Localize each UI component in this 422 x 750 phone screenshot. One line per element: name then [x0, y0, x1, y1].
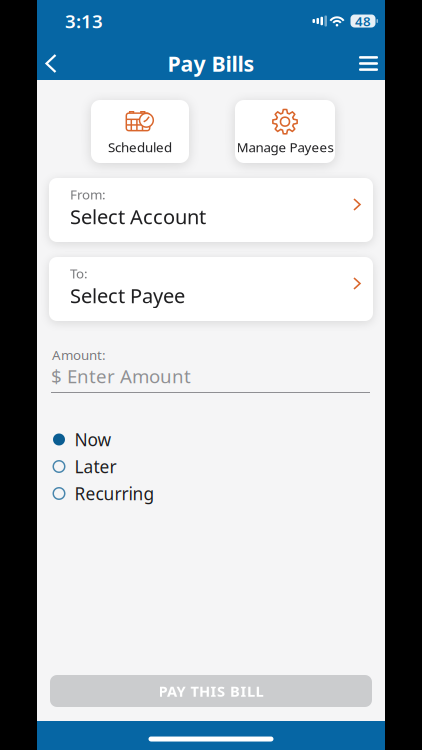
- staticText: Now: [74, 428, 111, 451]
- button[interactable]: Menu: [359, 50, 385, 77]
- staticText: Manage Payees: [236, 138, 333, 156]
- button[interactable]: Back: [37, 48, 57, 79]
- button[interactable]: Later: [37, 453, 385, 480]
- button[interactable]: Enter Amount: [36, 364, 386, 393]
- staticText: PAY THIS BILL: [158, 681, 263, 701]
- button[interactable]: PAY THIS BILL: [50, 675, 372, 707]
- staticText: Select Account: [70, 203, 206, 230]
- staticText: Later: [74, 455, 116, 478]
- staticText: To:: [70, 264, 88, 282]
- button[interactable]: Scheduled: [91, 100, 189, 163]
- staticText: Recurring: [74, 482, 154, 505]
- staticText: 3:13: [65, 9, 103, 33]
- staticText: 48: [355, 12, 371, 30]
- button[interactable]: Manage Payees: [235, 100, 335, 163]
- staticText: Pay Bills: [167, 49, 254, 78]
- staticText: From:: [70, 185, 106, 203]
- staticText: $ Enter Amount: [51, 364, 191, 388]
- button[interactable]: To:: [49, 257, 373, 321]
- button[interactable]: Now: [37, 426, 385, 453]
- staticText: Amount:: [52, 346, 106, 364]
- staticText: Scheduled: [108, 138, 172, 156]
- button[interactable]: From:: [49, 178, 373, 242]
- staticText: Select Payee: [70, 282, 185, 309]
- button[interactable]: Recurring: [37, 480, 385, 507]
